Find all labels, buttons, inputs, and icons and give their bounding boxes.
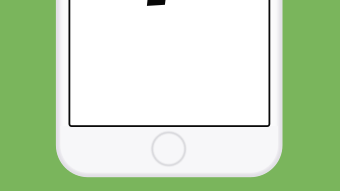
button[interactable]: Home — [150, 130, 187, 167]
